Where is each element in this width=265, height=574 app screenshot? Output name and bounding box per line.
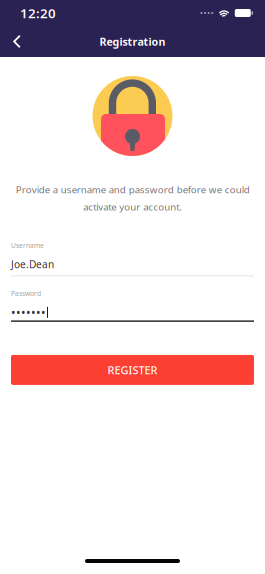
staticText: Provide a username and password before w… [15, 183, 249, 213]
staticText: REGISTER [107, 362, 157, 377]
staticText: Registration [99, 34, 165, 49]
button[interactable]: Back [4, 26, 30, 57]
staticText: 12:20 [20, 4, 56, 22]
staticText: ••••••• [11, 304, 46, 320]
staticText: Username [11, 241, 44, 250]
staticText: Joe.Dean [11, 257, 54, 271]
button[interactable]: REGISTER [11, 355, 254, 385]
staticText: Password [11, 289, 41, 298]
